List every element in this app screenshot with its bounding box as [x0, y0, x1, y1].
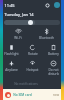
button[interactable]: Flashlight [0, 44, 22, 56]
staticText: Battery [48, 52, 59, 56]
button[interactable]: Bluetooth [32, 28, 60, 40]
button[interactable]: Account [54, 2, 60, 8]
button[interactable]: Do not disturb [43, 60, 64, 76]
staticText: Hotspot [26, 68, 39, 72]
staticText: Wi-Fi [14, 36, 22, 40]
staticText: Flashlight [4, 52, 19, 56]
staticText: No notifications [14, 82, 38, 86]
button[interactable]: Wi-Fi [4, 28, 32, 40]
button[interactable]: Hotspot [22, 60, 43, 72]
button[interactable]: Settings [45, 3, 50, 8]
staticText: Rotate [28, 52, 38, 56]
button[interactable]: Airplane [0, 60, 22, 72]
staticText: Bluetooth [39, 36, 54, 40]
staticText: Tuesday, Jan 14 [4, 12, 34, 17]
staticText: No SIM card [13, 93, 32, 97]
button[interactable]: Rotate [22, 44, 43, 56]
staticText: now [53, 93, 59, 97]
button[interactable]: No SIM card [3, 89, 61, 100]
staticText: Airplane [5, 68, 18, 72]
staticText: 11:45 [4, 3, 15, 8]
button[interactable]: Battery [43, 44, 64, 56]
button[interactable] [4, 20, 60, 25]
staticText: Do not disturb [43, 68, 64, 76]
